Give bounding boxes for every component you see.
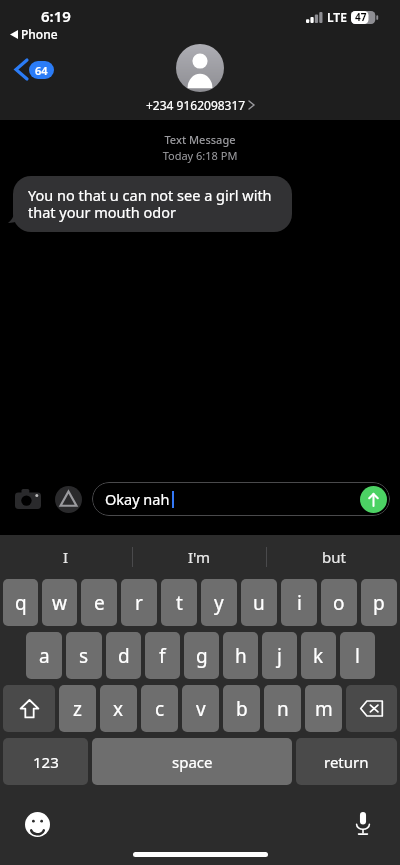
staticText: a xyxy=(39,643,50,669)
button[interactable]: v xyxy=(182,685,219,732)
staticText: f xyxy=(159,643,166,669)
button[interactable]: a xyxy=(26,632,62,679)
button[interactable]: App Store xyxy=(52,483,84,515)
button[interactable]: Back to conversations, 64 unread xyxy=(16,60,54,79)
button[interactable]: p xyxy=(361,579,397,626)
button[interactable]: return xyxy=(296,738,397,785)
button[interactable]: I'm xyxy=(133,535,266,579)
button[interactable]: x xyxy=(100,685,137,732)
button[interactable]: I xyxy=(0,535,132,579)
staticText: e xyxy=(94,590,105,616)
button[interactable]: q xyxy=(3,579,38,626)
staticText: 123 xyxy=(33,752,59,772)
staticText: b xyxy=(236,696,248,722)
button[interactable]: u xyxy=(241,579,277,626)
staticText: z xyxy=(73,696,82,722)
staticText: h xyxy=(235,643,247,669)
button[interactable]: c xyxy=(141,685,178,732)
staticText: y xyxy=(214,590,224,616)
button[interactable]: j xyxy=(262,632,297,679)
button[interactable]: but xyxy=(267,535,400,579)
staticText: x xyxy=(113,696,124,722)
staticText: v xyxy=(196,696,206,722)
staticText: k xyxy=(313,643,324,669)
button[interactable]: d xyxy=(106,632,141,679)
button[interactable]: m xyxy=(305,685,342,732)
staticText: Text Message xyxy=(0,132,400,147)
staticText: r xyxy=(135,590,143,616)
staticText: 47 xyxy=(355,10,367,24)
button[interactable]: z xyxy=(59,685,96,732)
button[interactable]: y xyxy=(201,579,237,626)
staticText: m xyxy=(315,696,333,722)
button[interactable]: r xyxy=(121,579,157,626)
button[interactable]: g xyxy=(184,632,219,679)
button[interactable]: Phone xyxy=(10,26,58,42)
staticText: u xyxy=(253,590,265,616)
button[interactable]: Emoji xyxy=(22,809,52,839)
staticText: d xyxy=(118,643,130,669)
staticText: t xyxy=(176,590,183,616)
staticText: j xyxy=(277,643,282,669)
button[interactable]: w xyxy=(42,579,77,626)
button[interactable]: Dictation xyxy=(348,809,378,839)
staticText: return xyxy=(324,752,369,772)
button[interactable]: n xyxy=(264,685,301,732)
staticText: n xyxy=(277,696,289,722)
staticText: but xyxy=(322,547,346,567)
button[interactable]: l xyxy=(340,632,375,679)
staticText: Phone xyxy=(21,26,58,42)
staticText: Okay nah xyxy=(105,489,170,509)
button[interactable]: i xyxy=(281,579,317,626)
button[interactable]: Backspace xyxy=(346,685,397,732)
staticText: g xyxy=(196,643,208,669)
button[interactable]: Send xyxy=(360,486,387,513)
button[interactable]: b xyxy=(223,685,260,732)
button[interactable]: s xyxy=(66,632,102,679)
button[interactable]: You no that u can not see a girl with th… xyxy=(13,176,292,232)
button[interactable]: o xyxy=(321,579,357,626)
staticText: I'm xyxy=(188,547,211,567)
staticText: q xyxy=(15,590,27,616)
staticText: p xyxy=(373,590,385,616)
staticText: I xyxy=(63,547,69,567)
button[interactable]: t xyxy=(161,579,197,626)
staticText: LTE xyxy=(327,9,347,25)
button[interactable]: +234 9162098317 xyxy=(146,97,254,113)
staticText: c xyxy=(155,696,165,722)
staticText: You no that u can not see a girl with th… xyxy=(28,185,278,222)
staticText: Today 6:18 PM xyxy=(0,148,400,163)
staticText: s xyxy=(79,643,89,669)
staticText: +234 9162098317 xyxy=(146,97,246,113)
staticText: 64 xyxy=(35,63,48,78)
button[interactable]: Contact avatar xyxy=(176,44,224,92)
button[interactable]: Camera xyxy=(10,481,46,517)
button[interactable]: e xyxy=(81,579,117,626)
button[interactable]: Shift xyxy=(3,685,55,732)
staticText: 6:19 xyxy=(41,6,71,26)
staticText: o xyxy=(333,590,345,616)
button[interactable]: 123 xyxy=(3,738,88,785)
button[interactable]: k xyxy=(301,632,336,679)
staticText: w xyxy=(52,590,67,616)
staticText: space xyxy=(172,752,213,772)
button[interactable]: h xyxy=(223,632,258,679)
button[interactable]: f xyxy=(145,632,180,679)
button[interactable]: space xyxy=(92,738,292,785)
staticText: i xyxy=(297,590,302,616)
staticText: l xyxy=(355,643,360,669)
button[interactable]: Okay nah xyxy=(92,482,390,516)
